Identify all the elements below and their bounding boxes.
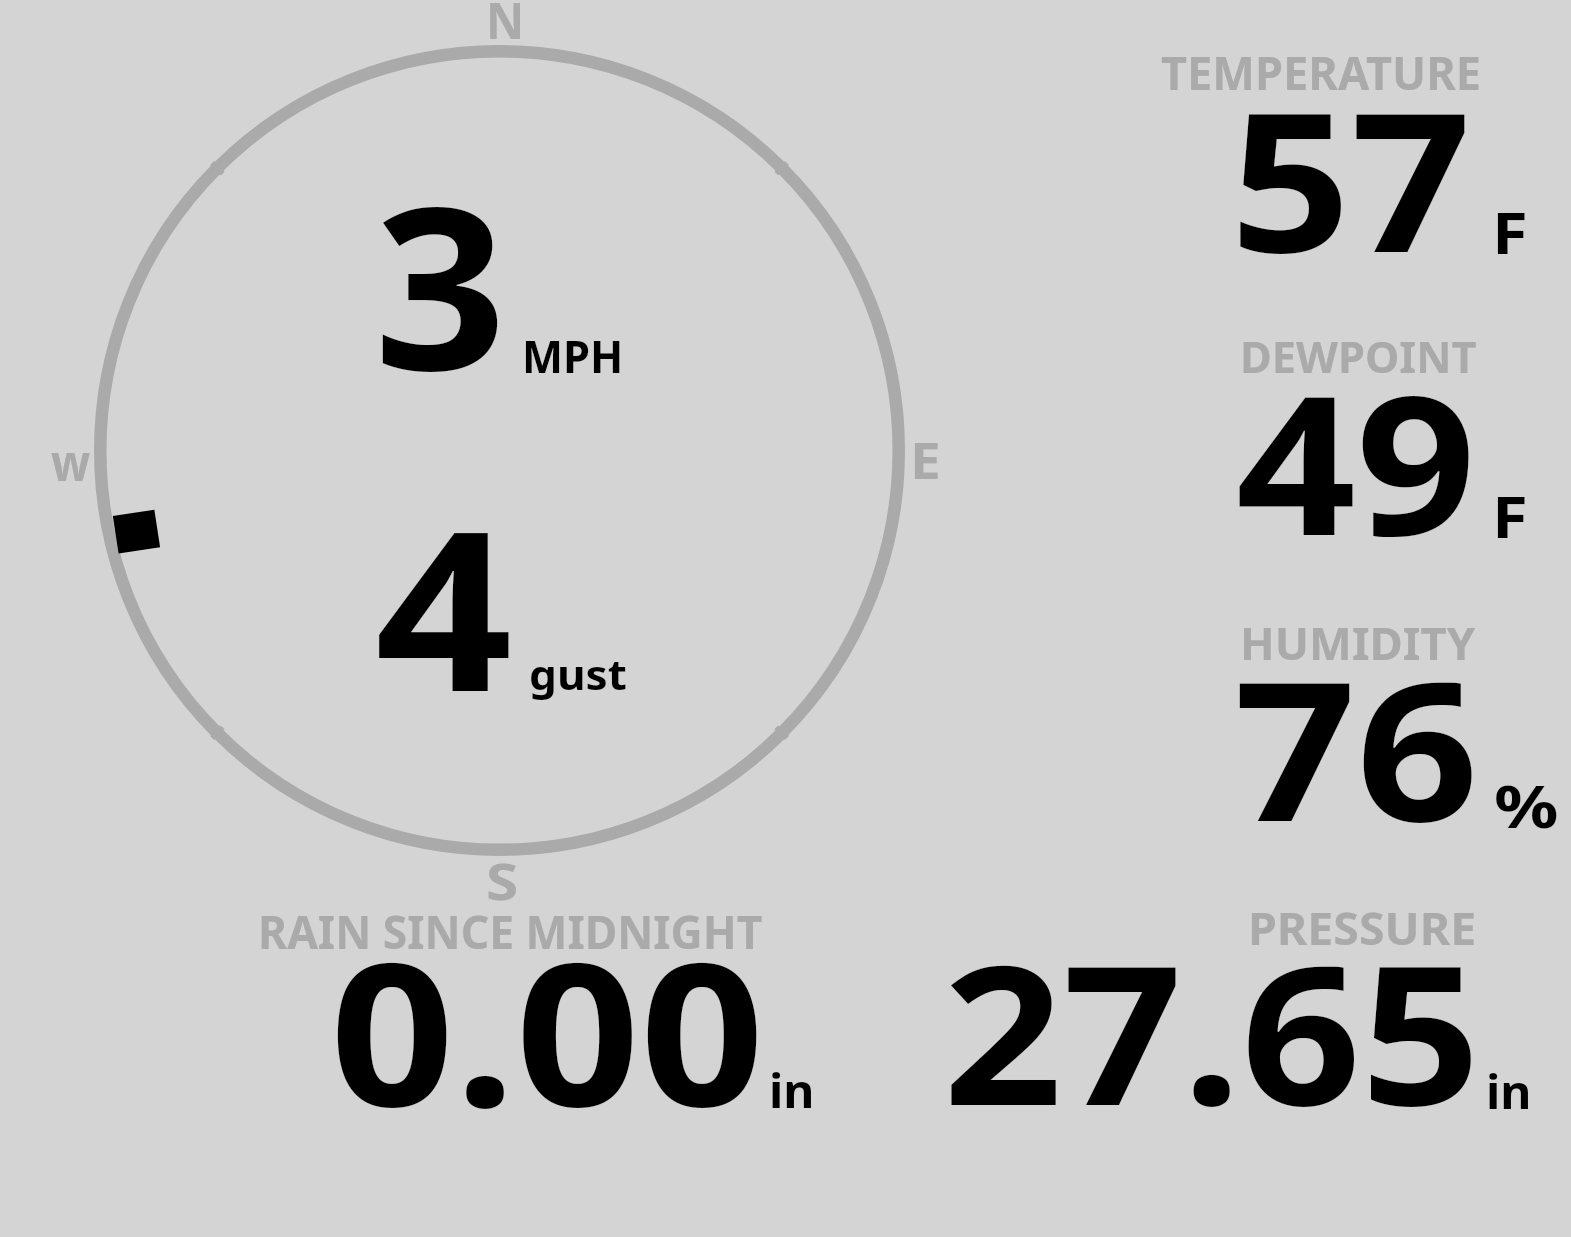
staticText: 0.00 — [330, 895, 765, 1164]
staticText: N — [486, 0, 524, 54]
staticText: RAIN SINCE MIDNIGHT — [258, 899, 763, 962]
staticText: F — [1492, 192, 1528, 271]
staticText: gust — [529, 647, 627, 702]
staticText: 27.65 — [943, 900, 1481, 1161]
staticText: DEWPOINT — [1240, 326, 1477, 386]
button[interactable]: Humidity 76 percent — [960, 600, 1560, 850]
staticText: HUMIDITY — [1240, 612, 1475, 673]
staticText: 4 — [375, 455, 513, 756]
staticText: PRESSURE — [1248, 897, 1477, 958]
button[interactable]: Temperature 57 F — [960, 30, 1560, 280]
staticText: S — [486, 845, 519, 914]
staticText: in — [769, 1058, 815, 1122]
staticText: w — [51, 428, 90, 496]
staticText: E — [910, 426, 941, 494]
button[interactable]: Wind 3 MPH, gust 4, direction west south… — [60, 20, 940, 890]
button[interactable]: Rain since midnight 0.00 in — [200, 890, 840, 1130]
staticText: 3 — [374, 130, 507, 436]
staticText: F — [1492, 476, 1528, 555]
button[interactable]: Pressure 27.65 in — [900, 890, 1560, 1130]
staticText: 76 — [1234, 615, 1479, 877]
staticText: % — [1494, 765, 1559, 845]
staticText: in — [1486, 1059, 1532, 1123]
staticText: 49 — [1236, 329, 1476, 592]
staticText: TEMPERATURE — [1161, 40, 1481, 104]
button[interactable]: Dewpoint 49 F — [960, 315, 1560, 565]
staticText: 57 — [1230, 46, 1472, 308]
staticText: MPH — [522, 325, 624, 387]
